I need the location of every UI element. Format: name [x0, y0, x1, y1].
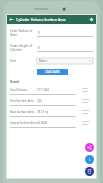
staticText: Enter Height of Cylinder	[10, 44, 37, 52]
staticText: Enter Radius of Base	[10, 29, 37, 37]
button[interactable]: Favourite	[86, 15, 96, 24]
staticText: Cubic Meter	[82, 87, 93, 93]
staticText: 0	[38, 46, 40, 50]
staticText: 0	[38, 31, 40, 35]
staticText: Square Meter	[82, 120, 93, 126]
staticText: Cylinder Volume Surface Area	[16, 17, 86, 22]
button[interactable]: Info	[85, 155, 94, 164]
staticText: 157.1434	[37, 88, 82, 92]
staticText: Total Surface Area	[10, 99, 37, 103]
staticText: Result	[10, 80, 20, 84]
button[interactable]: Meter	[37, 58, 93, 64]
staticText: Total Volume	[10, 88, 37, 92]
staticText: Meter	[39, 59, 48, 63]
staticText: Unit	[10, 59, 37, 63]
staticText: Lateral Surface Area	[10, 121, 37, 125]
staticText: 62.8585	[37, 121, 82, 125]
button[interactable]: CALCULATE	[37, 69, 68, 75]
staticText: Base Surface Area	[10, 110, 37, 114]
staticText: 226	[37, 99, 82, 103]
staticText: Square Meter	[82, 98, 93, 104]
staticText: Square Meter	[82, 109, 93, 115]
button[interactable]: Back	[7, 15, 16, 24]
button[interactable]: Calculator	[85, 167, 94, 176]
staticText: CALCULATE	[45, 70, 60, 74]
button[interactable]: Share	[85, 143, 94, 152]
staticText: 78.57 sq	[37, 110, 82, 114]
